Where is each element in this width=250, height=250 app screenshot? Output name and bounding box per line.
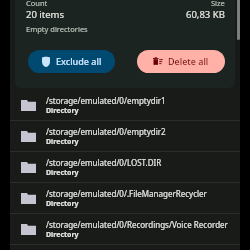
staticText: Size [211,0,225,8]
button[interactable]: /storage/emulated/0/Recordings/Voice Rec… [10,214,240,244]
staticText: 20 items [26,8,65,21]
staticText: Directory [46,230,79,240]
staticText: Count [26,0,48,8]
staticText: 60,83 KB [186,8,225,21]
button[interactable]: /storage/emulated/0/emptydir2 [10,121,240,151]
staticText: /storage/emulated/0/emptydir1 [46,95,166,106]
staticText: /storage/emulated/0/.FileManagerRecycler [46,188,207,199]
button[interactable]: /storage/emulated/0/LOST.DIR [10,152,240,182]
staticText: Directory [46,168,79,178]
staticText: Empty directories [26,24,88,34]
staticText: Delete all [168,55,209,67]
staticText: Directory [46,106,79,116]
staticText: /storage/emulated/0/Recordings/Voice Rec… [46,219,228,230]
staticText: Exclude all [56,55,102,67]
button[interactable]: Exclude all [28,50,115,73]
button[interactable]: /storage/emulated/0/emptydir1 [10,90,240,120]
staticText: /storage/emulated/0/emptydir2 [46,126,166,137]
button[interactable]: Delete all [137,50,225,73]
staticText: /storage/emulated/0/LOST.DIR [46,157,162,168]
staticText: Directory [46,137,79,147]
staticText: Directory [46,199,79,209]
button[interactable]: /storage/emulated/0/.FileManagerRecycler [10,183,240,213]
